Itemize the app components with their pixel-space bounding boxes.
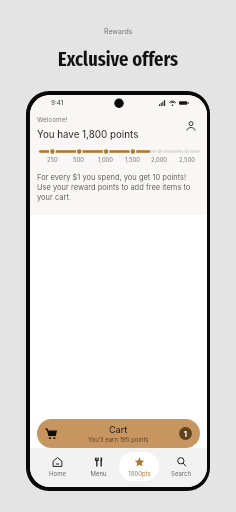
staticText: Menu: [90, 470, 107, 477]
staticText: 1800pts: [128, 470, 151, 477]
button[interactable]: Cart: [37, 419, 200, 448]
button[interactable]: Home: [37, 452, 77, 481]
staticText: 2,500: [179, 156, 195, 163]
staticText: Exclusive offers: [58, 47, 179, 71]
staticText: 500: [73, 156, 84, 163]
staticText: 250: [47, 156, 58, 163]
button[interactable]: Account: [183, 118, 198, 133]
staticText: For every $1 you spend, you get 10 point…: [37, 173, 200, 202]
other: Cart item count: [179, 427, 192, 440]
button[interactable]: Search: [161, 452, 201, 481]
staticText: Cart: [109, 424, 128, 435]
staticText: 1,000: [98, 156, 113, 163]
staticText: 1: [184, 430, 187, 438]
staticText: Rewards: [104, 27, 133, 35]
staticText: Welcome!: [37, 116, 68, 124]
staticText: You have 1,800 points: [37, 129, 139, 141]
staticText: 2,000: [151, 156, 168, 163]
staticText: Home: [49, 470, 66, 477]
staticText: Search: [171, 470, 191, 477]
staticText: You'll earn 195 points: [88, 436, 149, 443]
staticText: 1,500: [125, 156, 140, 163]
button[interactable]: 1800pts: [119, 452, 159, 481]
button[interactable]: Menu: [78, 452, 118, 481]
staticText: 9:41: [51, 99, 64, 107]
